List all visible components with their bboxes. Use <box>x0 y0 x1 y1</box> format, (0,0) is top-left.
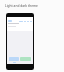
button[interactable] <box>20 57 31 61</box>
staticText: Light and dark theme <box>5 4 38 8</box>
button[interactable] <box>8 20 12 22</box>
button[interactable] <box>19 21 23 22</box>
